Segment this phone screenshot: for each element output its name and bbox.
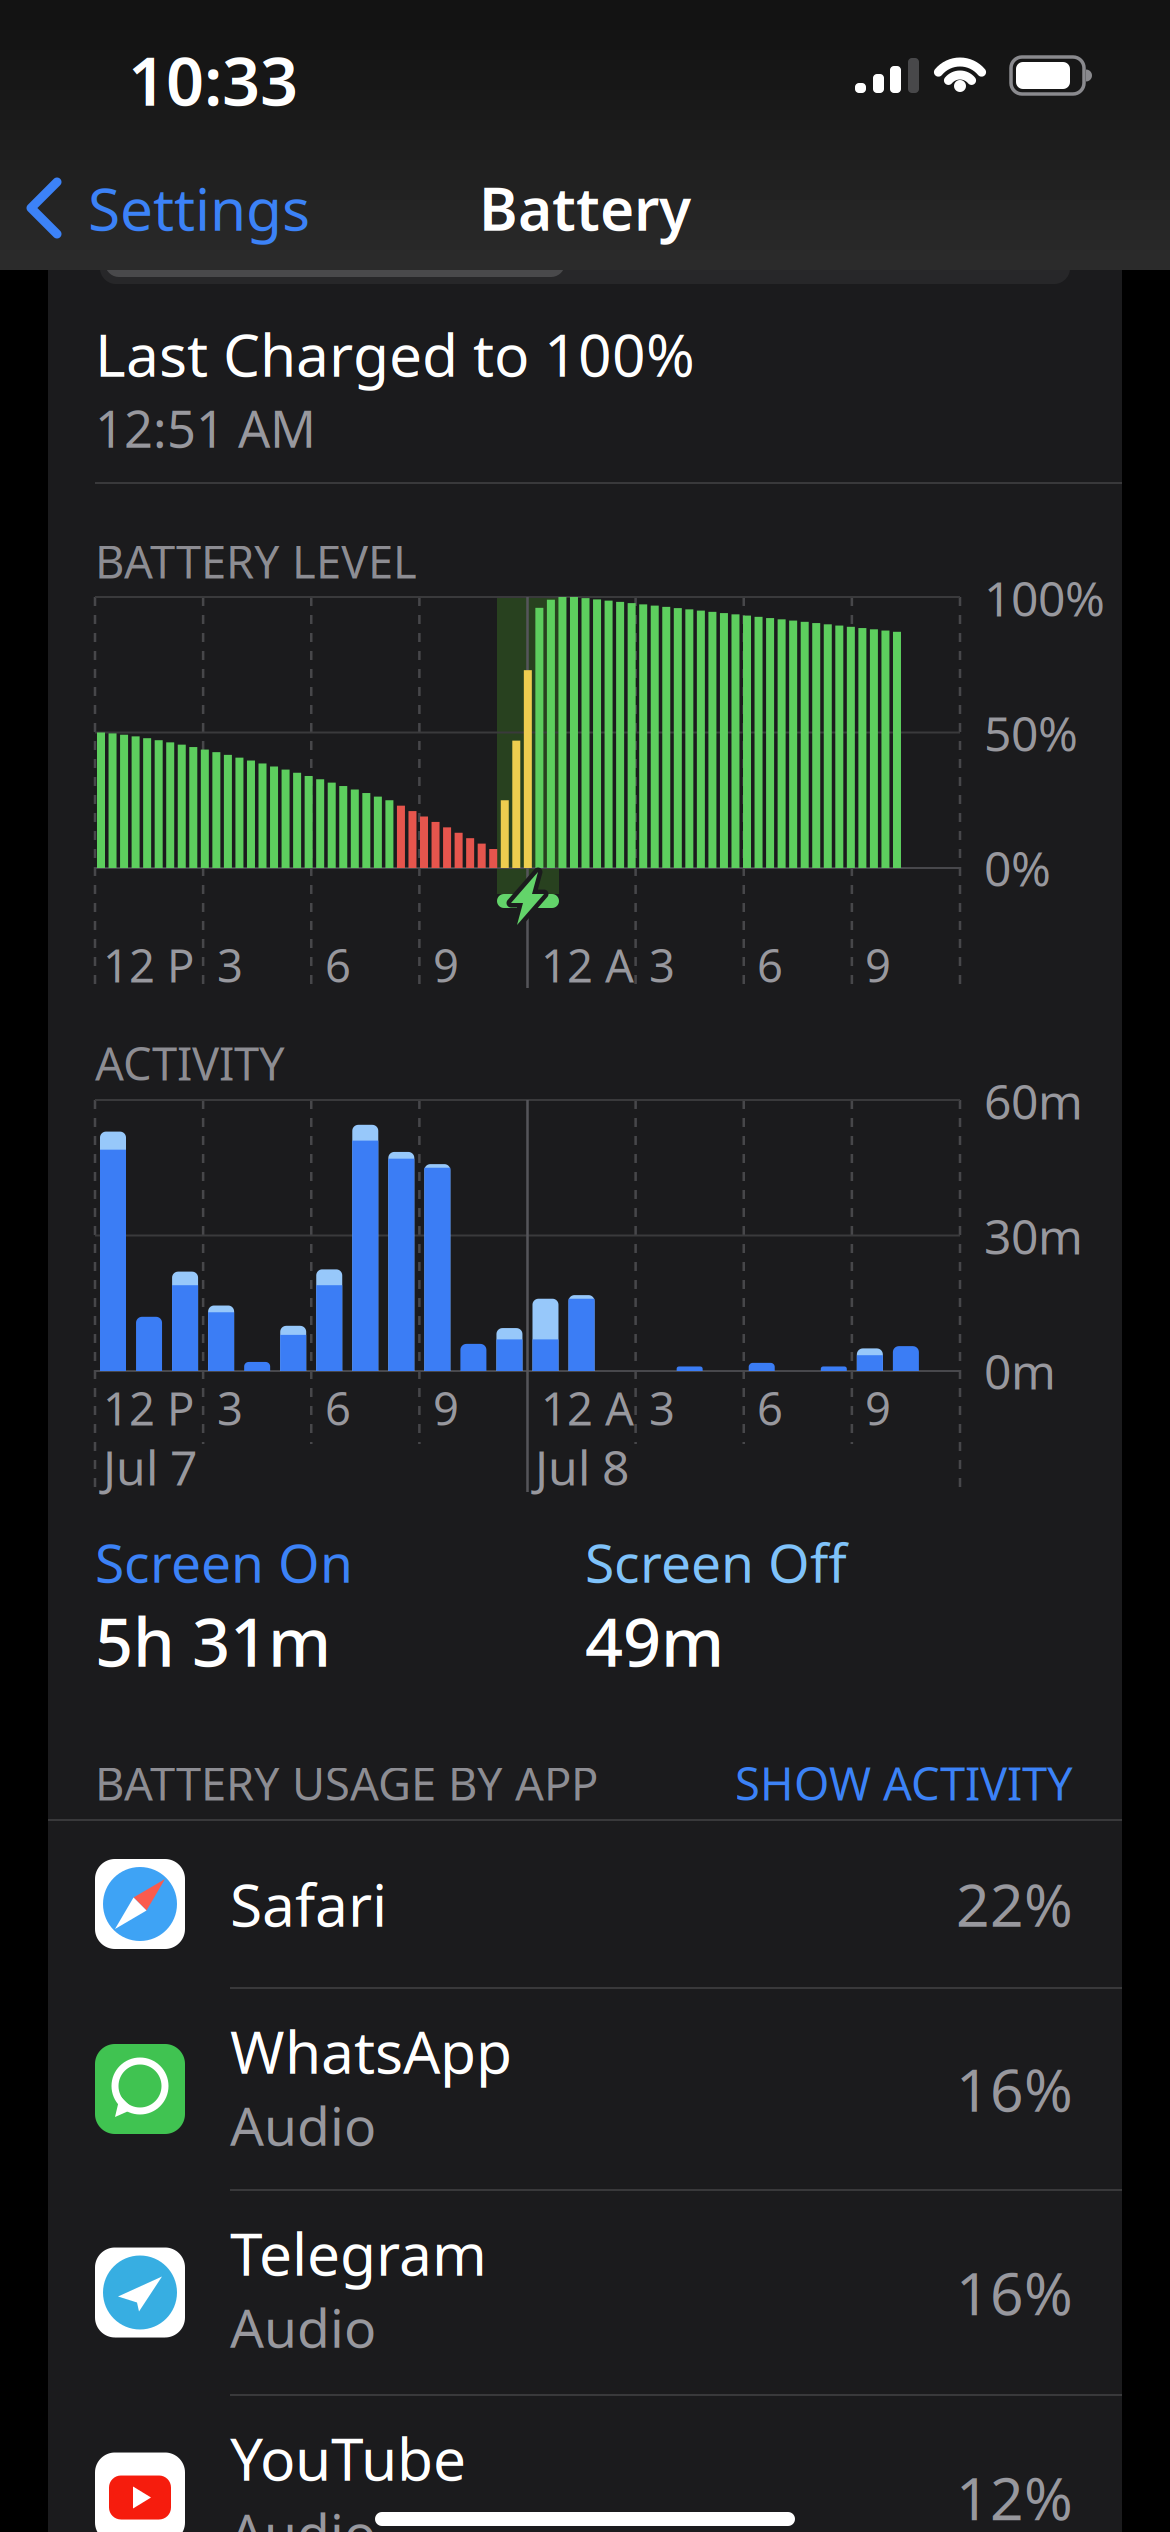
staticText: 9 <box>433 935 459 995</box>
staticText: YouTube <box>230 2419 466 2497</box>
staticText: Last Charged to 100% <box>95 315 695 393</box>
staticText: 22% <box>956 1865 1073 1943</box>
staticText: 6 <box>325 1378 351 1438</box>
staticText: Telegram <box>230 2214 487 2292</box>
staticText: Settings <box>88 169 310 247</box>
staticText: 9 <box>865 1378 891 1438</box>
staticText: 9 <box>865 935 891 995</box>
staticText: 50% <box>984 701 1078 765</box>
staticText: Audio <box>230 2292 376 2362</box>
staticText: 12 P <box>103 1378 194 1438</box>
staticText: 3 <box>649 935 675 995</box>
staticText: 100% <box>984 566 1105 630</box>
staticText: 49m <box>585 1597 724 1685</box>
staticText: 16% <box>956 2050 1073 2128</box>
staticText: 12:51 AM <box>95 394 316 462</box>
staticText: Screen On <box>95 1527 353 1597</box>
staticText: 6 <box>325 935 351 995</box>
staticText: 3 <box>217 1378 243 1438</box>
staticText: WhatsApp <box>230 2012 512 2090</box>
staticText: SHOW ACTIVITY <box>735 1753 1073 1813</box>
staticText: 12 P <box>103 935 194 995</box>
staticText: Screen Off <box>585 1527 847 1597</box>
staticText: 3 <box>217 935 243 995</box>
staticText: 10:33 <box>128 36 298 124</box>
staticText: Battery <box>479 169 691 247</box>
staticText: 6 <box>757 1378 783 1438</box>
button[interactable]: Last 24 Hours <box>100 244 1070 284</box>
staticText: 9 <box>433 1378 459 1438</box>
staticText: 5h 31m <box>95 1597 331 1685</box>
staticText: 0m <box>984 1339 1056 1403</box>
button[interactable]: Settings <box>0 0 300 100</box>
staticText: BATTERY LEVEL <box>95 531 417 591</box>
button[interactable]: YouTube <box>48 2395 1122 2532</box>
staticText: Jul 7 <box>103 1435 197 1499</box>
staticText: 12% <box>956 2458 1073 2532</box>
staticText: 16% <box>956 2253 1073 2331</box>
staticText: 12 A <box>541 935 634 995</box>
button[interactable]: Telegram <box>48 2190 1122 2395</box>
button[interactable]: WhatsApp <box>48 1988 1122 2190</box>
staticText: 3 <box>649 1378 675 1438</box>
staticText: Safari <box>230 1865 387 1943</box>
staticText: 12 A <box>541 1378 634 1438</box>
staticText: 0% <box>984 836 1051 900</box>
staticText: Jul 8 <box>535 1435 629 1499</box>
staticText: Audio <box>230 2090 376 2160</box>
button[interactable]: Safari <box>48 1820 1122 1988</box>
staticText: 30m <box>984 1204 1083 1268</box>
staticText: 6 <box>757 935 783 995</box>
staticText: ACTIVITY <box>95 1033 285 1093</box>
staticText: 60m <box>984 1069 1083 1133</box>
staticText: BATTERY USAGE BY APP <box>95 1753 598 1813</box>
staticText: Audio <box>230 2497 376 2532</box>
